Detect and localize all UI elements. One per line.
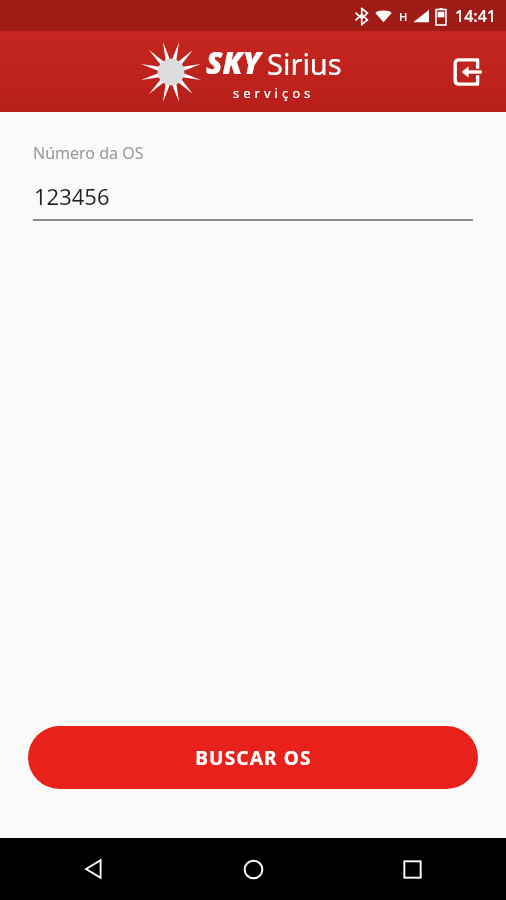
staticText: serviços (233, 84, 315, 102)
button[interactable]: Recentes (333, 838, 492, 900)
button[interactable]: Início (174, 838, 333, 900)
staticText: Sirius (267, 44, 342, 83)
button[interactable]: Sair (444, 48, 492, 96)
staticText: SKY (206, 42, 261, 83)
button[interactable]: Voltar (14, 838, 174, 900)
staticText: BUSCAR OS (195, 745, 312, 771)
staticText: H (399, 9, 408, 24)
staticText: Número da OS (33, 142, 144, 164)
button[interactable]: BUSCAR OS (28, 726, 478, 789)
staticText: 14:41 (455, 5, 496, 27)
staticText: 123456 (34, 181, 110, 211)
